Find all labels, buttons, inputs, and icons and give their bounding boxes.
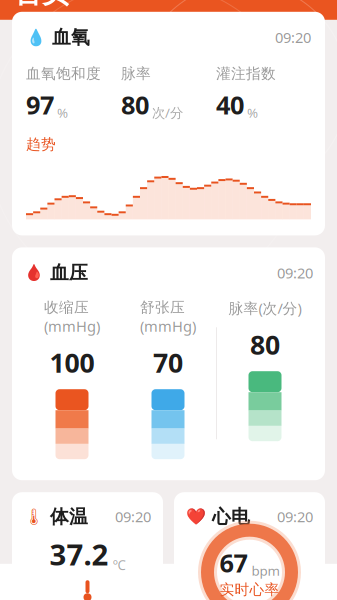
staticText: 🌡 — [24, 507, 44, 526]
button[interactable]: ❤️ — [174, 492, 325, 600]
staticText: ℃ — [112, 556, 125, 574]
staticText: 体温 — [50, 505, 88, 528]
staticText: 💧 — [26, 28, 46, 46]
staticText: 70 — [153, 345, 183, 380]
staticText: 09:20 — [277, 507, 313, 526]
staticText: 100 — [49, 345, 94, 380]
staticText: 首页 — [14, 0, 70, 10]
staticText: 40 — [216, 88, 244, 121]
staticText: % — [57, 104, 68, 121]
staticText: bpm — [251, 562, 279, 579]
staticText: 灌注指数 — [216, 65, 276, 83]
button[interactable]: 🌡 — [12, 492, 163, 600]
staticText: % — [247, 104, 258, 121]
staticText: 脉率 — [121, 65, 151, 83]
staticText: 80 — [121, 88, 149, 121]
staticText: 09:20 — [275, 27, 311, 47]
staticText: 趋势 — [26, 135, 56, 153]
staticText: 心电 — [212, 505, 250, 528]
button[interactable]: 💧 — [12, 12, 325, 235]
staticText: 09:20 — [277, 263, 313, 283]
staticText: 次/分 — [152, 104, 183, 121]
staticText: 收缩压(mmHg) — [44, 298, 100, 336]
staticText: 血氧饱和度 — [26, 65, 101, 83]
staticText: 舒张压(mmHg) — [140, 298, 196, 336]
staticText: 37.2 — [49, 535, 108, 574]
staticText: ❤️ — [186, 507, 206, 526]
staticText: 09:20 — [115, 507, 151, 526]
staticText: 血氧 — [52, 26, 90, 49]
staticText: 实时心率 — [219, 580, 279, 598]
staticText: 血压 — [50, 261, 88, 284]
staticText: 97 — [26, 88, 54, 121]
staticText: 🩸 — [24, 264, 44, 282]
staticText: 80 — [250, 327, 280, 362]
button[interactable]: 🩸 — [12, 247, 325, 480]
staticText: 脉率(次/分) — [228, 298, 301, 318]
staticText: 67 — [219, 546, 247, 579]
